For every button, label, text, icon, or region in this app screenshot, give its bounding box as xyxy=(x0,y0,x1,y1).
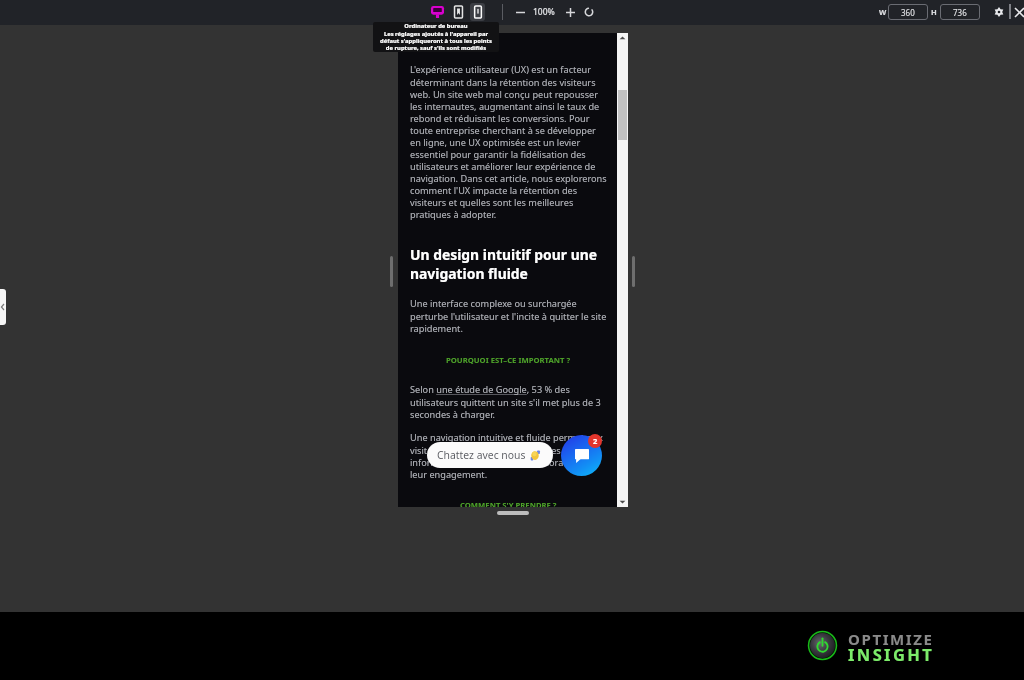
button[interactable]: Resize height xyxy=(497,511,529,515)
staticText: POURQUOI EST–CE IMPORTANT ? xyxy=(446,355,571,365)
button[interactable]: Settings xyxy=(991,4,1007,20)
staticText: Un design intuitif pour une navigation f… xyxy=(410,245,607,283)
staticText: INSIGHT xyxy=(848,643,935,665)
staticText: Une interface complexe ou surchargée per… xyxy=(410,297,607,335)
button[interactable]: 360 xyxy=(888,4,928,20)
button[interactable]: Close xyxy=(1011,4,1024,20)
button[interactable]: Tablet preview xyxy=(447,1,469,23)
button[interactable]: Open chat xyxy=(561,435,602,476)
staticText: 360 xyxy=(901,7,915,18)
staticText: COMMENT S'Y PRENDRE ? xyxy=(460,500,557,507)
staticText: H xyxy=(931,7,937,17)
button[interactable]: Zoom in xyxy=(561,3,579,21)
staticText: W xyxy=(879,7,887,17)
staticText: Les réglages ajoutés à l'appareil par dé… xyxy=(380,30,492,52)
button[interactable]: Collapse panel xyxy=(0,289,6,325)
button[interactable]: Resize right xyxy=(632,256,635,287)
staticText: Ordinateur de bureau xyxy=(404,22,468,30)
staticText: Une navigation intuitive et fluide perme… xyxy=(410,431,607,481)
button[interactable]: Resize left xyxy=(390,256,393,287)
button[interactable]: Zoom out xyxy=(511,3,529,21)
button[interactable]: Mobile preview xyxy=(470,3,485,21)
staticText: 736 xyxy=(953,7,967,18)
staticText: OPTIMIZE xyxy=(848,629,934,649)
button[interactable]: Desktop preview xyxy=(426,1,448,23)
staticText: Chattez avec nous xyxy=(437,448,526,462)
staticText: L'expérience utilisateur (UX) est un fac… xyxy=(410,63,607,221)
staticText: Selon une étude de Google, 53 % des util… xyxy=(410,383,607,421)
staticText: 2 xyxy=(593,436,598,446)
button[interactable]: Reset zoom xyxy=(580,3,598,21)
button[interactable]: Chattez avec nous xyxy=(427,442,553,468)
staticText: 100% xyxy=(533,6,555,18)
button[interactable]: 736 xyxy=(940,4,980,20)
